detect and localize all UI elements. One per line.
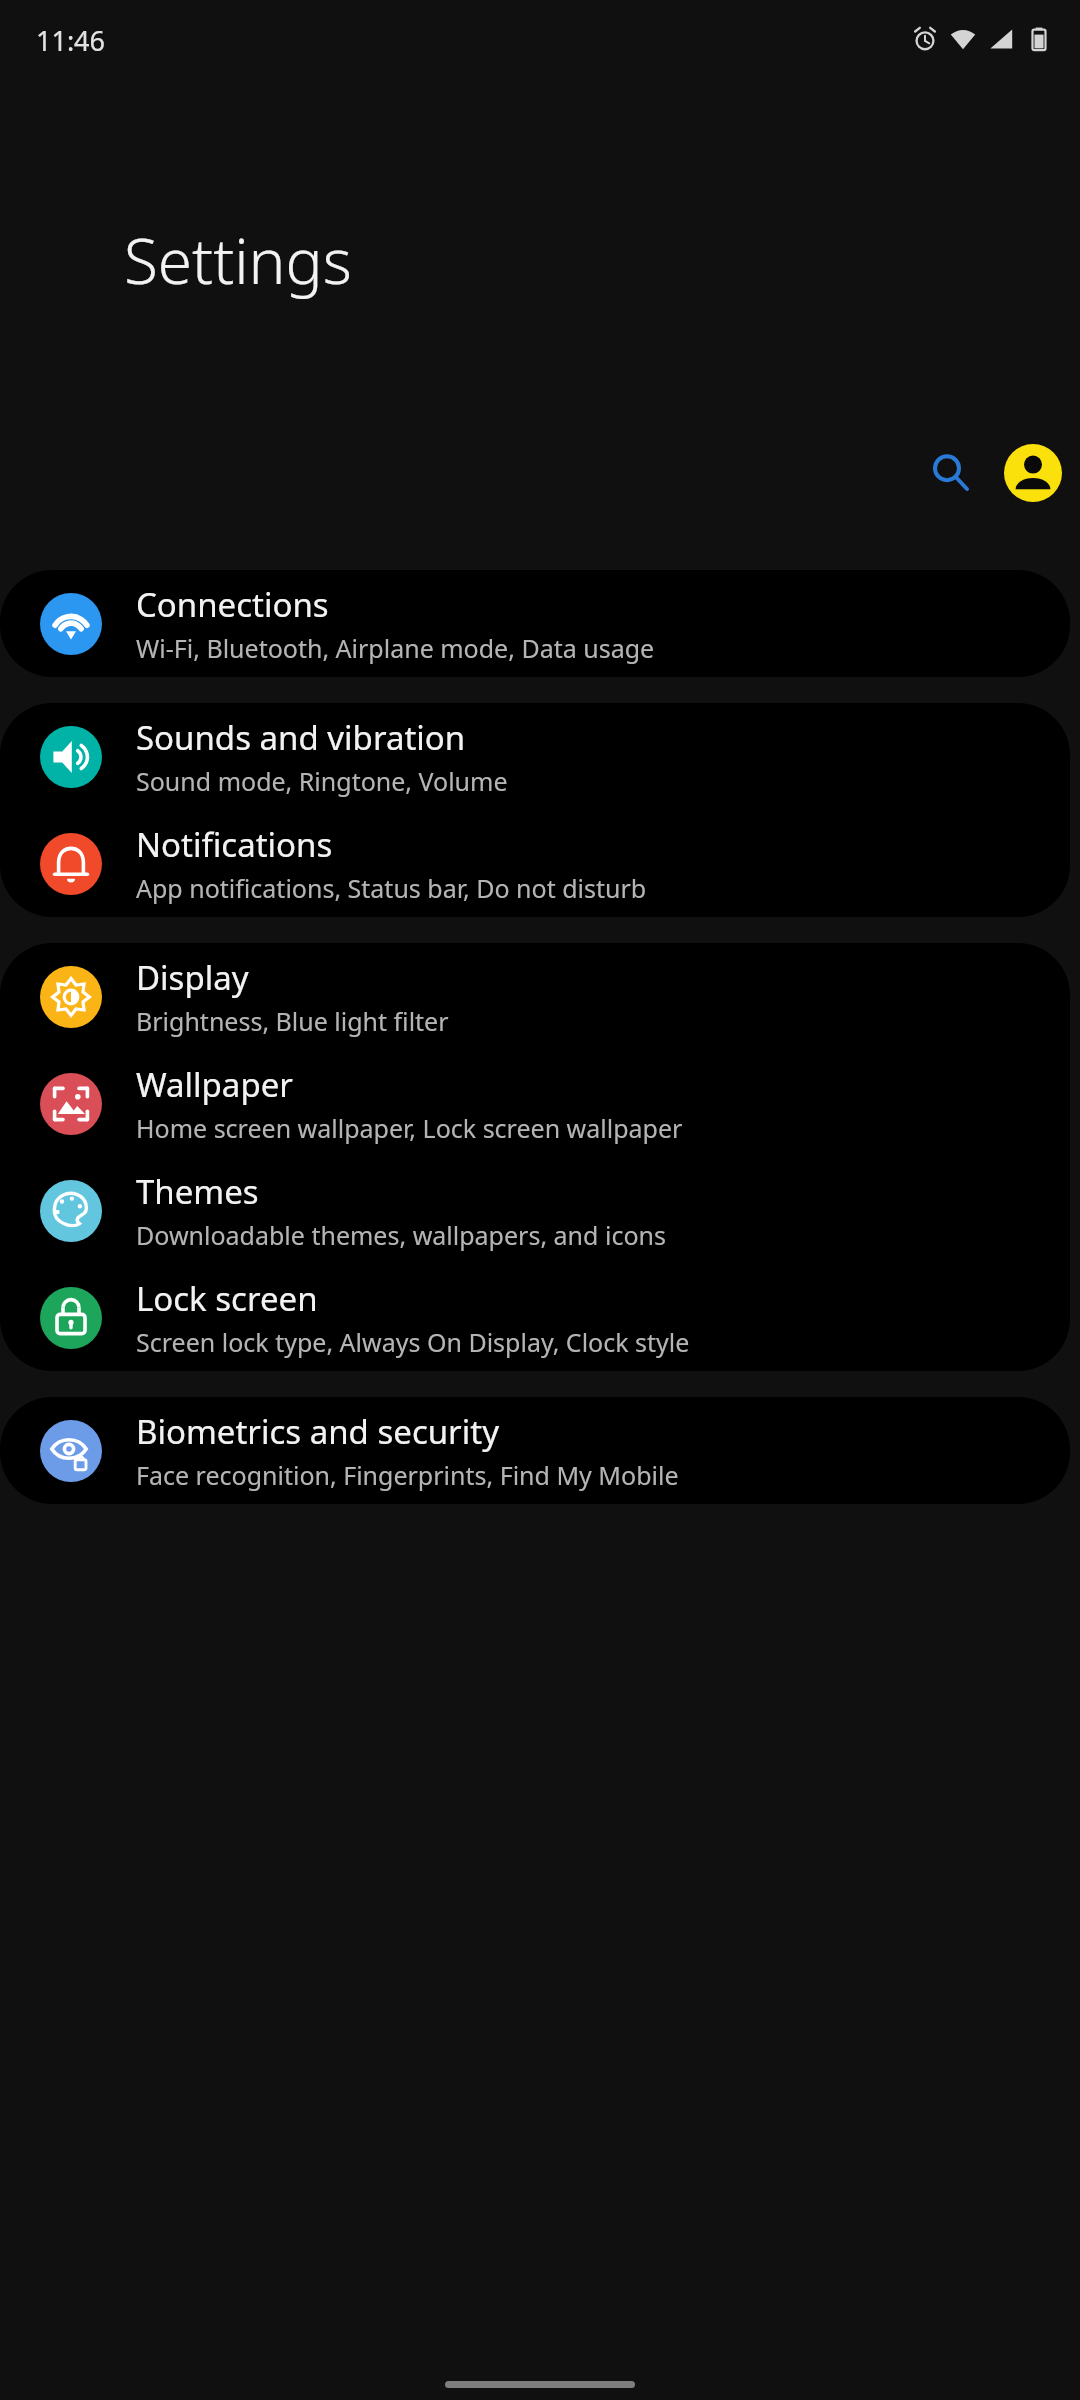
staticText: Screen lock type, Always On Display, Clo… [136,1325,690,1359]
staticText: Themes [136,1169,259,1214]
staticText: Biometrics and security [136,1409,499,1454]
button[interactable]: Sounds and vibration [0,703,1070,810]
staticText: App notifications, Status bar, Do not di… [136,871,647,905]
button[interactable]: Connections [0,570,1070,677]
staticText: Sound mode, Ringtone, Volume [136,764,508,798]
button[interactable]: Wallpaper [0,1050,1070,1157]
staticText: Settings [124,218,352,302]
button[interactable]: Themes [0,1157,1070,1264]
button[interactable]: Display [0,943,1070,1050]
staticText: Wi-Fi, Bluetooth, Airplane mode, Data us… [136,631,655,665]
button[interactable]: Lock screen [0,1264,1070,1371]
staticText: Brightness, Blue light filter [136,1004,449,1038]
staticText: Connections [136,582,329,627]
button[interactable]: Search settings [914,436,988,510]
button[interactable]: Biometrics and security [0,1397,1070,1504]
staticText: Home screen wallpaper, Lock screen wallp… [136,1111,683,1145]
staticText: Lock screen [136,1276,318,1321]
staticText: Face recognition, Fingerprints, Find My … [136,1458,679,1492]
staticText: Notifications [136,822,333,867]
staticText: Wallpaper [136,1062,293,1107]
button[interactable]: Samsung account profile [1004,444,1062,502]
staticText: Sounds and vibration [136,715,466,760]
staticText: Downloadable themes, wallpapers, and ico… [136,1218,666,1252]
staticText: Display [136,955,249,1000]
staticText: 11:46 [36,22,106,59]
button[interactable]: Notifications [0,810,1070,917]
